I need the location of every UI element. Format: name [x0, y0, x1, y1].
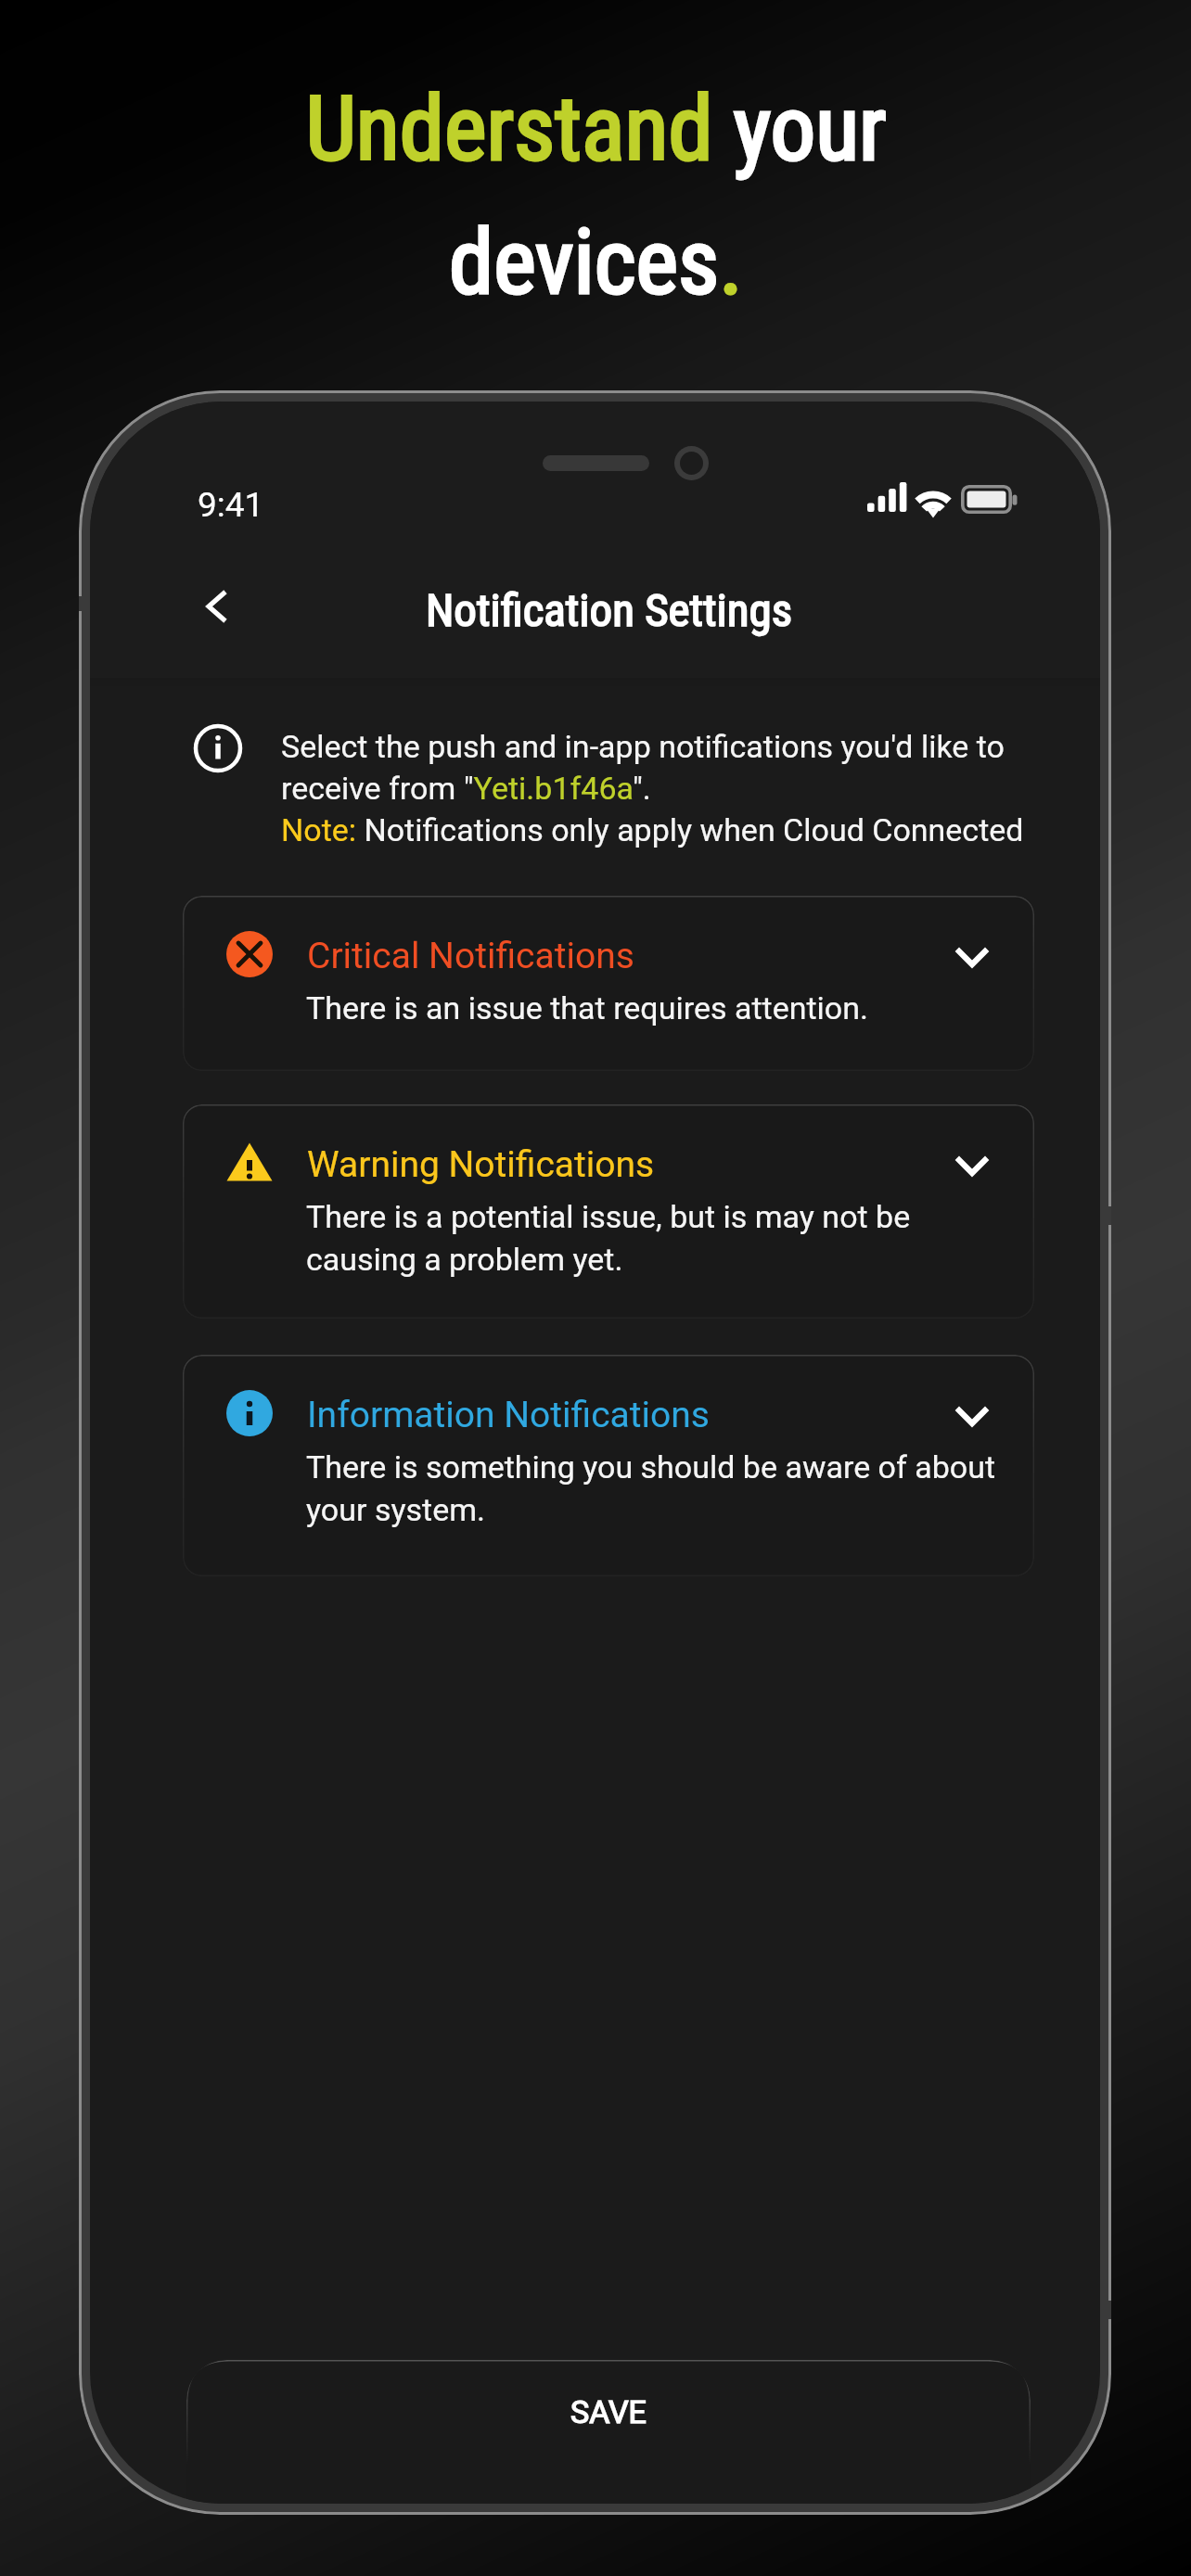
staticText: There is something you should be aware o… [306, 1448, 996, 1529]
staticText: Warning Notifications [307, 1143, 655, 1186]
staticText: devices. [449, 210, 743, 315]
staticText: There is a potential issue, but is may n… [306, 1198, 911, 1279]
staticText: Notification Settings [426, 584, 793, 637]
staticText: Understand your [305, 76, 887, 182]
button[interactable]: Expand [935, 1130, 1009, 1205]
button[interactable]: SAVE [186, 2360, 1031, 2504]
staticText: There is an issue that requires attentio… [306, 989, 868, 1027]
button[interactable]: Expand [935, 1381, 1009, 1455]
staticText: Critical Notifications [307, 935, 634, 977]
staticText: SAVE [570, 2393, 647, 2430]
staticText: 9:41 [198, 485, 264, 525]
staticText: Select the push and in-app notifications… [281, 728, 1097, 848]
button[interactable]: Information Notifications [183, 1355, 1034, 1576]
button[interactable]: Critical Notifications [183, 896, 1034, 1071]
button[interactable]: Warning Notifications [183, 1104, 1034, 1319]
button[interactable]: Back [172, 562, 261, 651]
button[interactable]: Expand [935, 922, 1009, 996]
staticText: Information Notifications [307, 1394, 710, 1436]
